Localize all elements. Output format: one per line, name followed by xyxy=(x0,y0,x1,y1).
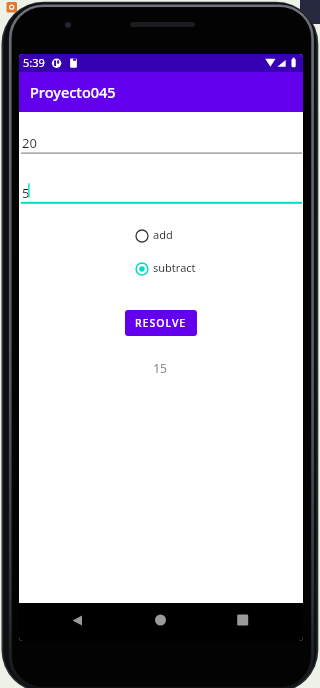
staticText: RESOLVE xyxy=(135,316,187,330)
staticText: 15 xyxy=(146,360,174,376)
staticText: Proyecto045 xyxy=(30,82,116,102)
staticText: 5:39 xyxy=(23,55,45,70)
button[interactable]: Recent apps xyxy=(226,606,260,638)
staticText: 5 xyxy=(22,184,30,202)
button[interactable]: Back xyxy=(57,606,91,638)
staticText: add xyxy=(153,227,173,241)
button[interactable]: Home xyxy=(144,606,178,638)
button[interactable]: 5 xyxy=(21,182,302,206)
button[interactable]: RESOLVE xyxy=(125,310,197,336)
button[interactable]: subtract xyxy=(135,262,196,276)
staticText: subtract xyxy=(153,260,196,274)
button[interactable]: 20 xyxy=(21,132,302,156)
staticText: 20 xyxy=(22,134,37,152)
button[interactable]: add xyxy=(135,229,173,243)
